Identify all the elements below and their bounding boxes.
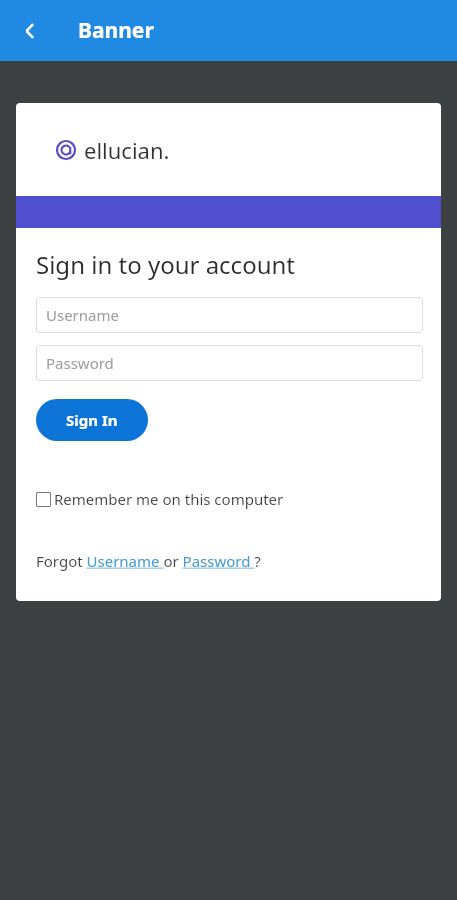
button[interactable]: Remember me on this computer <box>36 489 284 509</box>
button[interactable]: Password <box>36 345 423 381</box>
staticText: Password <box>46 353 114 373</box>
button[interactable]: Back <box>8 9 52 53</box>
staticText: Username <box>46 305 119 325</box>
staticText: Banner <box>78 16 154 45</box>
button[interactable]: Forgot Username or Password ? <box>36 551 261 571</box>
staticText: Remember me on this computer <box>54 489 284 509</box>
staticText: ellucian. <box>84 135 170 165</box>
staticText: Sign in to your account <box>36 248 295 281</box>
button[interactable]: Username <box>36 297 423 333</box>
staticText: Sign In <box>66 410 118 430</box>
button[interactable]: Sign In <box>36 399 148 441</box>
